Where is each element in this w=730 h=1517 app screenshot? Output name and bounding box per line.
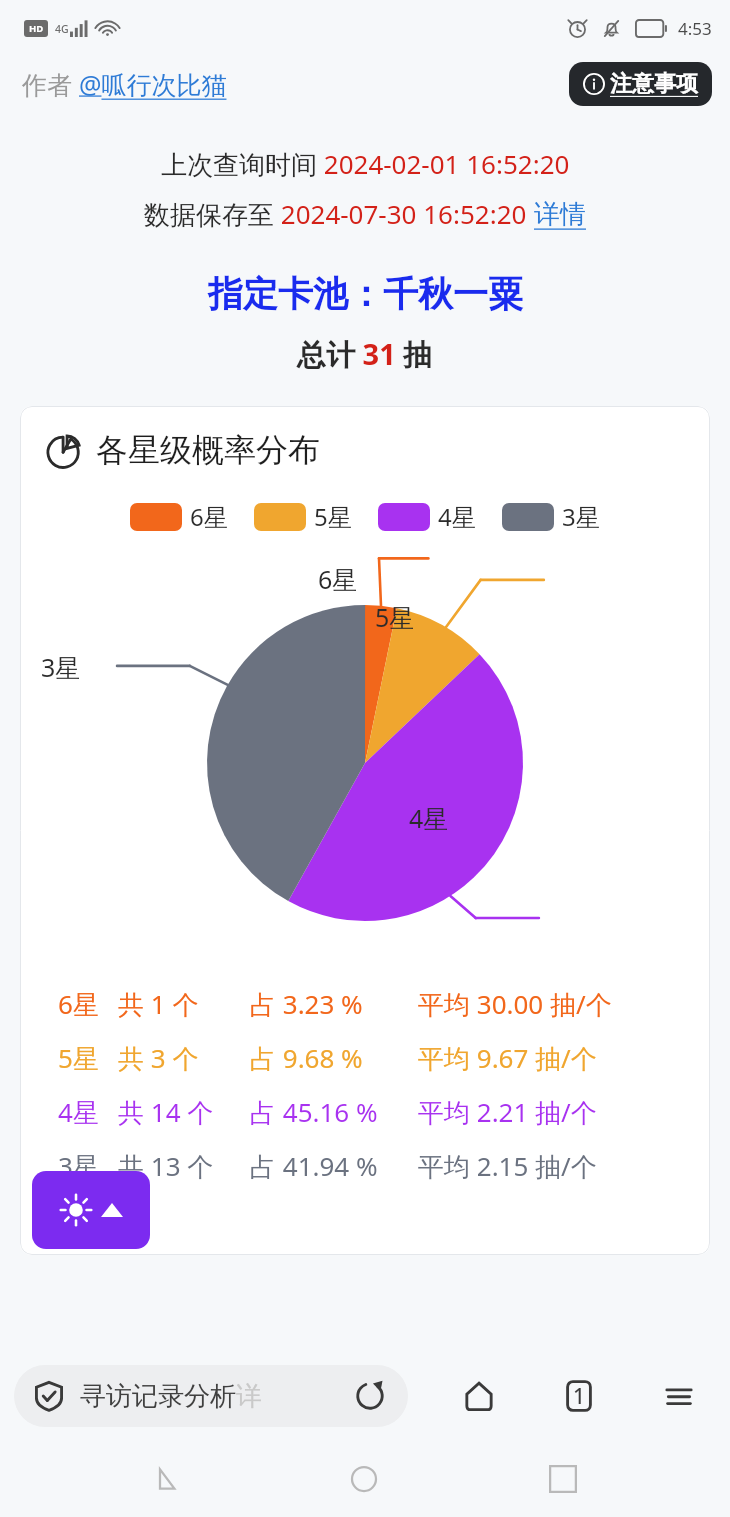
staticText: 6星: [58, 986, 99, 1022]
staticText: @呱行次比猫: [79, 67, 227, 101]
staticText: 5星: [58, 1040, 99, 1076]
staticText: 3星: [562, 500, 600, 533]
staticText: 4:53: [678, 17, 712, 40]
staticText: 共 13 个: [118, 1148, 214, 1184]
button[interactable]: Brightness: [32, 1171, 150, 1249]
button[interactable]: 6星: [130, 500, 228, 533]
button[interactable]: Tabs: [550, 1367, 608, 1425]
staticText: 平均 9.67 抽/个: [418, 1040, 597, 1076]
staticText: 占 3.23 %: [250, 986, 363, 1022]
button[interactable]: 6星: [20, 977, 710, 1031]
button[interactable]: Home: [332, 1447, 396, 1511]
staticText: 5星: [375, 600, 415, 634]
button[interactable]: Home: [450, 1367, 508, 1425]
staticText: 上次查询时间 2024-02-01 16:52:20: [161, 146, 570, 182]
button[interactable]: 5星: [20, 1031, 710, 1085]
staticText: 指定卡池：千秋一粟: [208, 272, 523, 316]
button[interactable]: 3星: [502, 500, 600, 533]
button[interactable]: 3星: [20, 1139, 710, 1193]
staticText: 共 1 个: [118, 986, 199, 1022]
staticText: 共 14 个: [118, 1094, 214, 1130]
staticText: 平均 30.00 抽/个: [418, 986, 612, 1022]
button[interactable]: 4星: [20, 1085, 710, 1139]
staticText: 4G: [55, 22, 69, 36]
staticText: 作者: [22, 67, 79, 101]
staticText: 3星: [41, 650, 81, 684]
staticText: 3星: [58, 1148, 99, 1184]
staticText: 6星: [318, 562, 358, 596]
staticText: HD: [29, 22, 44, 35]
button[interactable]: Reload: [350, 1376, 390, 1416]
staticText: 平均 2.21 抽/个: [418, 1094, 597, 1130]
staticText: 占 9.68 %: [250, 1040, 363, 1076]
staticText: 4星: [58, 1094, 99, 1130]
staticText: 6星: [190, 500, 228, 533]
staticText: 共 3 个: [118, 1040, 199, 1076]
staticText: 详情: [534, 198, 586, 231]
staticText: 4星: [438, 500, 476, 533]
staticText: 平均 2.15 抽/个: [418, 1148, 597, 1184]
button[interactable]: 详情: [534, 198, 586, 231]
staticText: 4星: [409, 801, 449, 835]
button[interactable]: @呱行次比猫: [79, 67, 227, 101]
staticText: 5星: [314, 500, 352, 533]
staticText: 注意事项: [610, 70, 698, 98]
staticText: 各星级概率分布: [96, 430, 320, 470]
button[interactable]: Menu: [650, 1367, 708, 1425]
staticText: 占 41.94 %: [250, 1148, 378, 1184]
button[interactable]: 5星: [254, 500, 352, 533]
staticText: 占 45.16 %: [250, 1094, 378, 1130]
staticText: 数据保存至 2024-07-30 16:52:20: [144, 196, 534, 232]
staticText: 寻访记录分析详: [80, 1380, 262, 1413]
button[interactable]: Recents: [531, 1447, 595, 1511]
button[interactable]: 寻访记录分析详: [14, 1365, 408, 1427]
staticText: 1: [573, 1382, 586, 1411]
button[interactable]: 注意事项: [569, 62, 712, 106]
staticText: 总计 31 抽: [297, 334, 433, 374]
button[interactable]: 4星: [378, 500, 476, 533]
button[interactable]: Back: [134, 1447, 198, 1511]
